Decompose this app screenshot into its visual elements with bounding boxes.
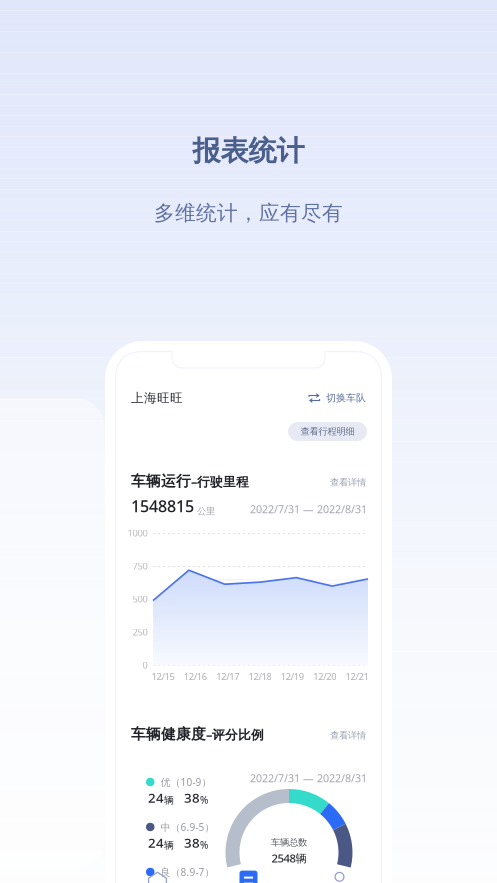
staticText: 12/17 — [216, 670, 239, 683]
staticText: 24 — [148, 833, 164, 852]
staticText: 辆 — [164, 839, 174, 852]
staticText: 辆 — [164, 794, 174, 807]
staticText: 报表统计 — [192, 133, 304, 169]
staticText: 查看详情 — [330, 729, 366, 741]
staticText: 2548辆 — [271, 850, 306, 866]
button[interactable]: 我的 — [309, 871, 369, 883]
staticText: 12/18 — [248, 670, 271, 683]
staticText: 车辆运行 — [131, 472, 191, 490]
staticText: 良（8.9-7） — [160, 865, 214, 879]
button[interactable]: 切换车队 — [308, 391, 366, 405]
staticText: 车辆总数 — [271, 837, 307, 848]
staticText: 1548815 — [131, 495, 194, 517]
staticText: 750 — [132, 560, 147, 572]
staticText: 上海旺旺 — [131, 390, 183, 406]
staticText: 38 — [184, 788, 200, 807]
staticText: 0 — [142, 659, 147, 671]
button[interactable]: 首页 — [127, 871, 187, 883]
staticText: 12/15 — [151, 670, 174, 683]
staticText: 12/20 — [313, 670, 336, 683]
staticText: 24 — [148, 788, 164, 807]
staticText: 250 — [132, 626, 147, 638]
staticText: 公里 — [194, 505, 215, 517]
staticText: 12/21 — [345, 670, 368, 683]
staticText: 中（6.9-5） — [160, 820, 214, 834]
staticText: 500 — [132, 593, 147, 605]
staticText: % — [200, 838, 208, 852]
staticText: 38 — [184, 833, 200, 852]
button[interactable]: 报表 — [218, 871, 278, 883]
button[interactable]: 查看详情 — [330, 474, 366, 490]
staticText: 12/19 — [281, 670, 304, 683]
staticText: 2022/7/31 — 2022/8/31 — [250, 771, 367, 785]
staticText: 优（10-9） — [160, 775, 211, 789]
button[interactable]: 查看行程明细 — [288, 422, 367, 441]
staticText: 切换车队 — [326, 392, 366, 404]
staticText: –行驶里程 — [191, 473, 249, 490]
staticText: 1000 — [127, 527, 147, 539]
staticText: 查看行程明细 — [300, 426, 354, 437]
staticText: 2022/7/31 — 2022/8/31 — [250, 502, 367, 516]
staticText: 查看详情 — [330, 476, 366, 488]
staticText: 12/16 — [184, 670, 207, 683]
staticText: % — [200, 793, 208, 807]
staticText: –评分比例 — [206, 726, 264, 743]
button[interactable]: 查看详情 — [330, 727, 366, 743]
staticText: 车辆健康度 — [131, 725, 206, 743]
staticText: 24 — [148, 878, 164, 883]
staticText: 多维统计，应有尽有 — [154, 200, 343, 226]
